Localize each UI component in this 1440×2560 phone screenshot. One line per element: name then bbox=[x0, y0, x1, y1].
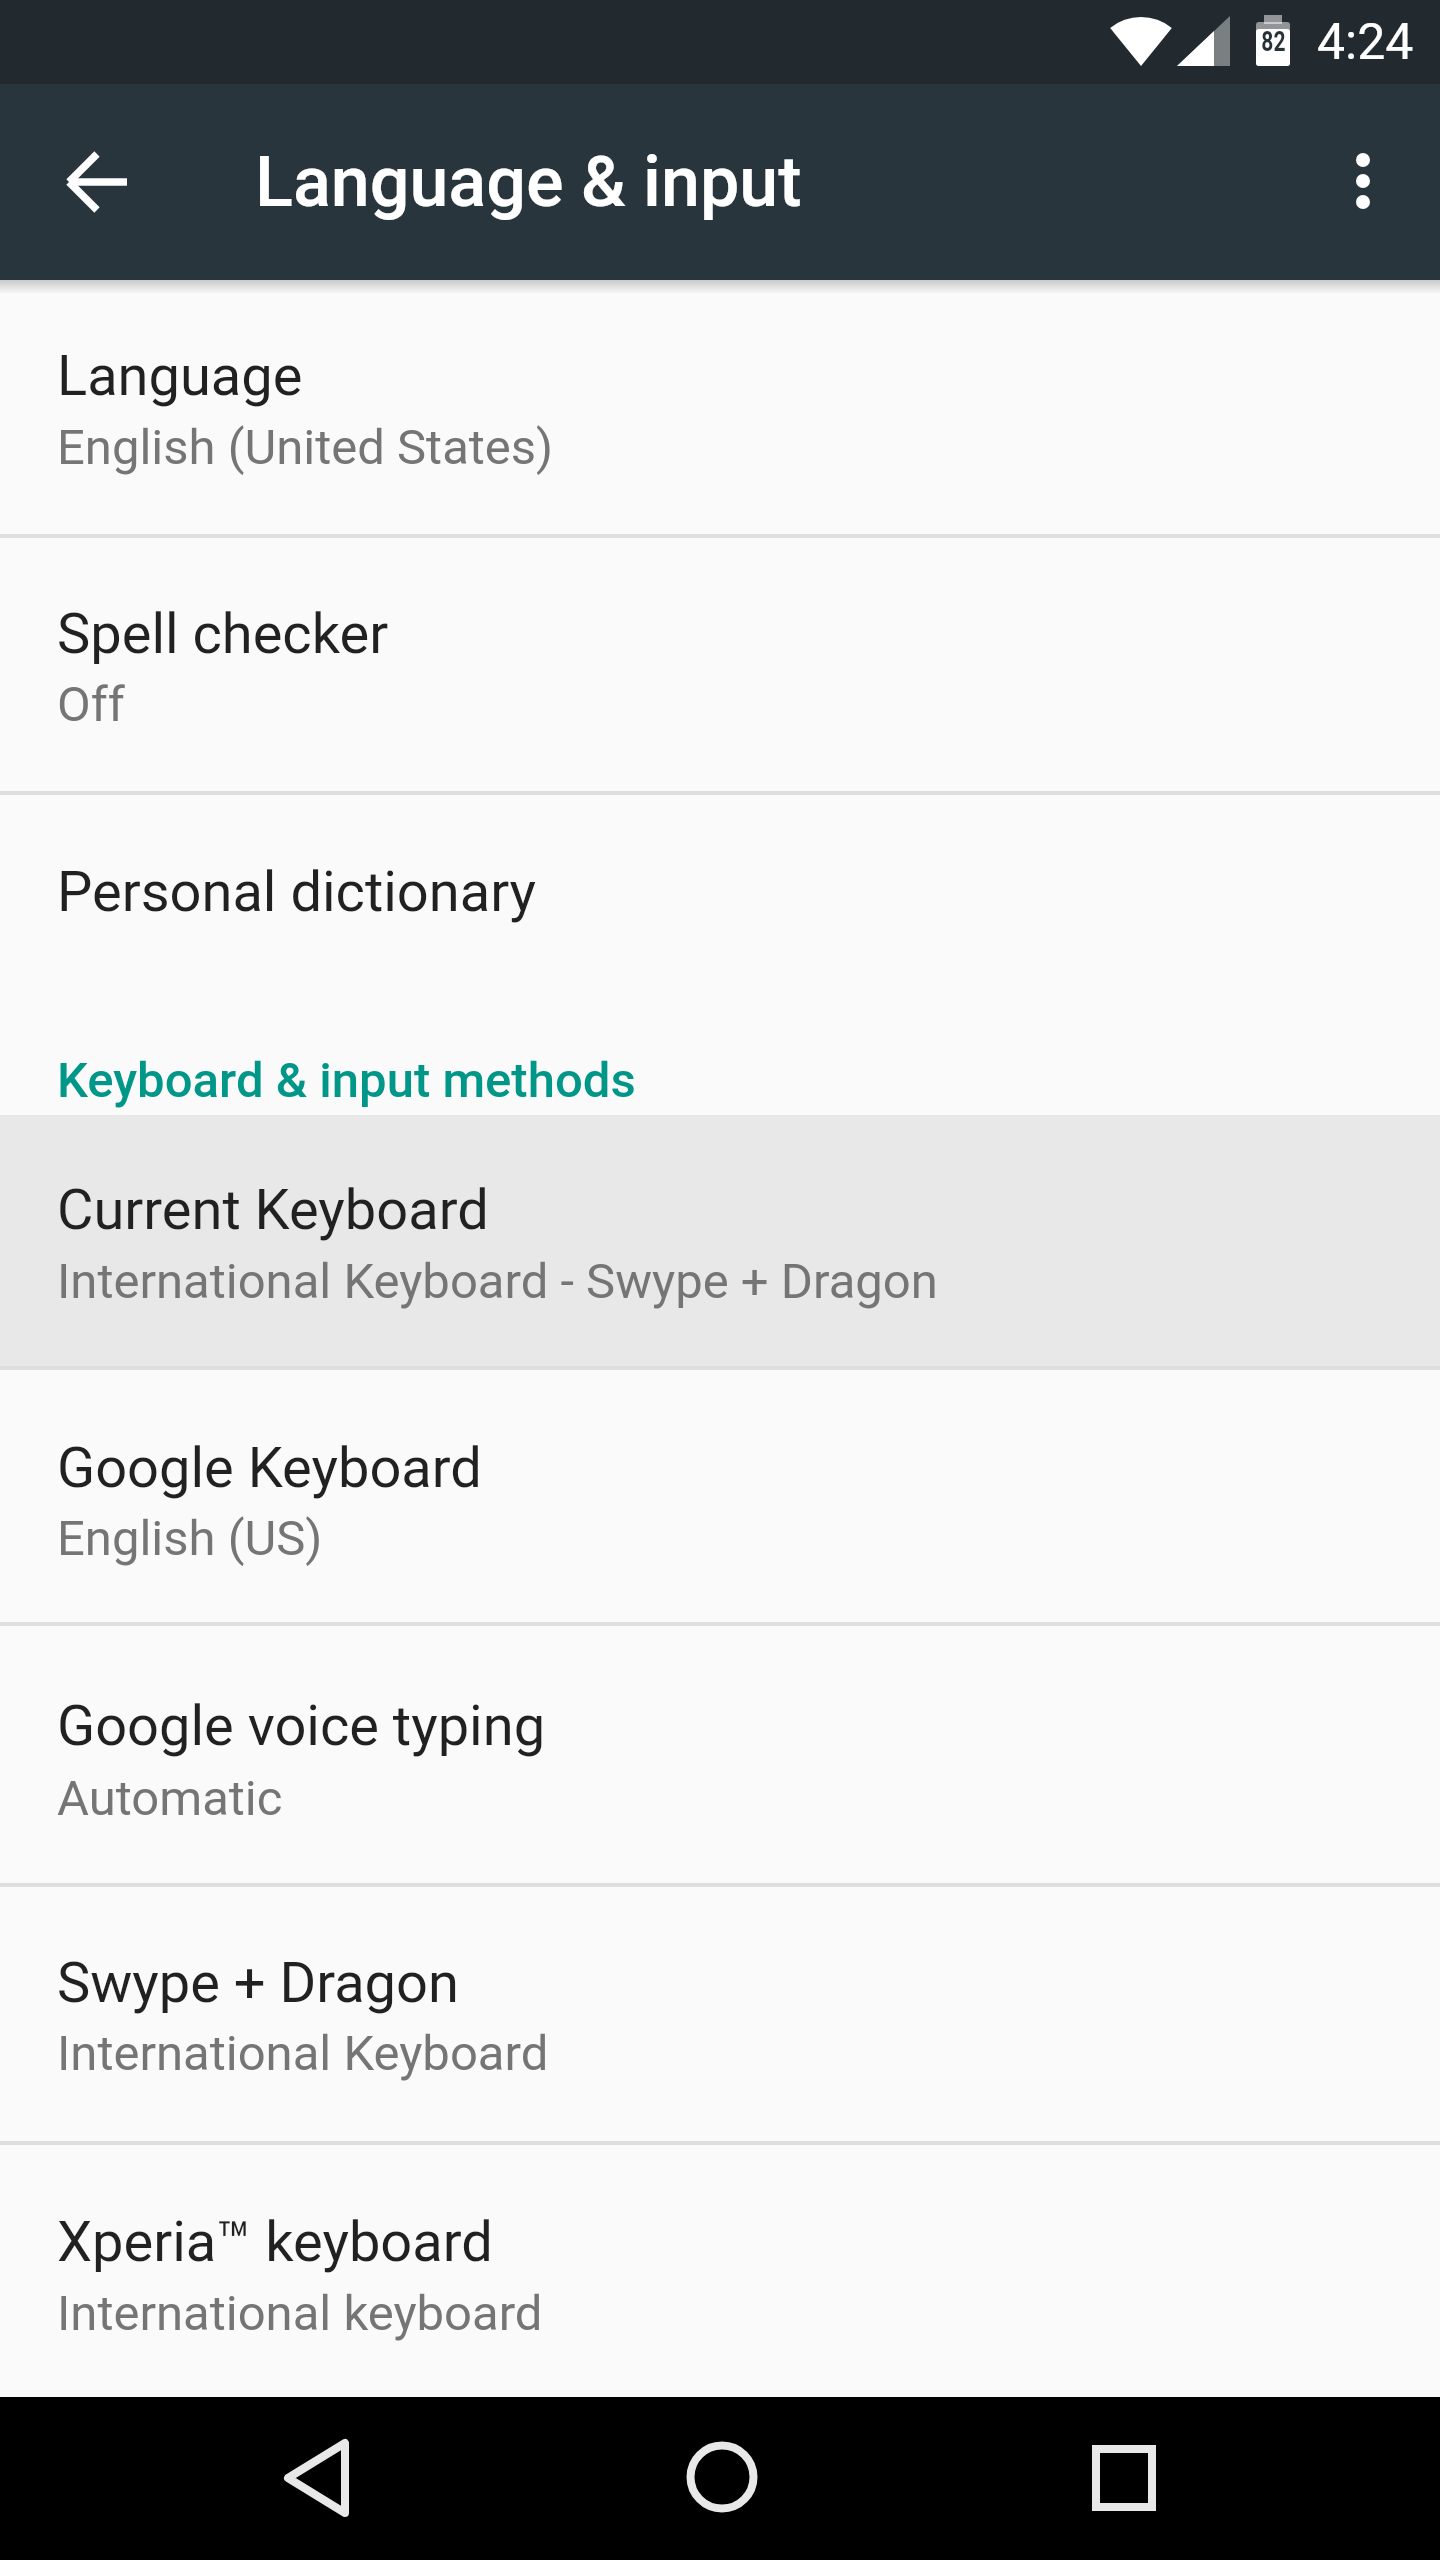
staticText: 82 bbox=[1261, 26, 1285, 58]
staticText: Google Keyboard bbox=[57, 1435, 482, 1501]
button[interactable] bbox=[1044, 2397, 1204, 2560]
staticText: Spell checker bbox=[57, 601, 389, 667]
button[interactable]: Google Keyboard bbox=[0, 1370, 1440, 1622]
button[interactable] bbox=[1293, 111, 1433, 251]
button[interactable]: Xperia™ keyboard bbox=[0, 2145, 1440, 2397]
staticText: International Keyboard bbox=[57, 2025, 549, 2082]
staticText: International keyboard bbox=[57, 2285, 543, 2342]
staticText: Google voice typing bbox=[57, 1693, 546, 1759]
staticText: Keyboard & input methods bbox=[57, 1052, 636, 1109]
button[interactable] bbox=[642, 2397, 802, 2560]
staticText: Language & input bbox=[255, 141, 802, 223]
staticText: Current Keyboard bbox=[57, 1177, 489, 1243]
button[interactable] bbox=[236, 2397, 396, 2560]
staticText: English (US) bbox=[57, 1510, 323, 1567]
staticText: Automatic bbox=[57, 1770, 283, 1827]
staticText: Language bbox=[57, 343, 303, 409]
staticText: English (United States) bbox=[57, 419, 554, 476]
button[interactable]: Google voice typing bbox=[0, 1626, 1440, 1883]
button[interactable]: Language bbox=[0, 280, 1440, 534]
staticText: Swype + Dragon bbox=[57, 1950, 459, 2016]
button[interactable]: Spell checker bbox=[0, 538, 1440, 791]
staticText: Personal dictionary bbox=[57, 859, 537, 925]
button[interactable]: Current Keyboard bbox=[0, 1115, 1440, 1366]
button[interactable]: Personal dictionary bbox=[0, 795, 1440, 945]
button[interactable]: Swype + Dragon bbox=[0, 1887, 1440, 2141]
staticText: Off bbox=[57, 676, 125, 733]
staticText: Xperia™ keyboard bbox=[57, 2209, 493, 2275]
button[interactable] bbox=[28, 112, 168, 252]
staticText: 4:24 bbox=[1317, 13, 1414, 72]
staticText: International Keyboard - Swype + Dragon bbox=[57, 1253, 938, 1310]
